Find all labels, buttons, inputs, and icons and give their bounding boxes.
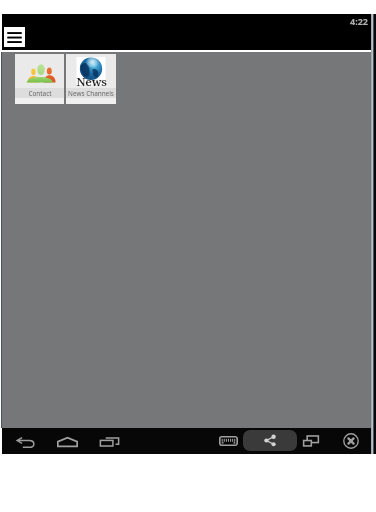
button[interactable]: News <box>66 54 116 104</box>
button[interactable]: Cast <box>298 428 324 454</box>
staticText: News <box>76 74 107 90</box>
button[interactable]: Share <box>243 430 297 451</box>
staticText: 4:22 <box>350 15 368 27</box>
button[interactable]: Close <box>338 428 364 454</box>
staticText: News Channels <box>68 89 114 98</box>
button[interactable]: Home <box>54 429 80 455</box>
button[interactable]: Contact <box>15 54 64 104</box>
button[interactable]: Keyboard <box>215 428 241 454</box>
button[interactable]: Menu <box>4 27 25 47</box>
button[interactable]: Back <box>12 429 38 455</box>
button[interactable]: Recents <box>96 429 122 455</box>
staticText: Contact <box>28 89 52 98</box>
